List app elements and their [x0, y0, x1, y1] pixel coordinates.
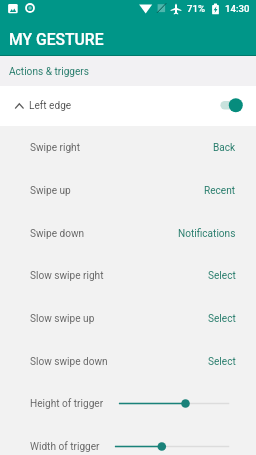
button[interactable]: Toggle left edge gesture [219, 94, 243, 118]
staticText: Height of trigger [30, 398, 104, 410]
staticText: Swipe down [30, 228, 85, 240]
staticText: Notifications [178, 228, 236, 240]
staticText: Actions & triggers [9, 66, 89, 78]
staticText: Slow swipe down [30, 356, 108, 368]
button[interactable]: Width of trigger slider [0, 425, 256, 455]
button[interactable]: Slow swipe down [0, 340, 256, 383]
staticText: Slow swipe up [30, 313, 95, 325]
staticText: Select [208, 313, 236, 325]
staticText: 14:30 [225, 3, 250, 14]
button[interactable]: Slow swipe right [0, 254, 256, 297]
staticText: Swipe right [30, 142, 80, 154]
button[interactable]: Actions & triggers [0, 56, 256, 86]
staticText: Width of trigger [30, 441, 100, 453]
button[interactable]: Height of trigger slider [0, 382, 256, 425]
staticText: MY GESTURE [9, 30, 104, 48]
staticText: 71% [187, 3, 205, 14]
button[interactable]: Swipe down [0, 212, 256, 255]
staticText: Select [208, 270, 236, 282]
staticText: Back [213, 142, 236, 154]
staticText: Slow swipe right [30, 270, 104, 282]
button[interactable]: Swipe up [0, 169, 256, 212]
staticText: Select [208, 356, 236, 368]
staticText: Recent [204, 185, 236, 197]
staticText: Swipe up [30, 185, 71, 197]
button[interactable]: Slow swipe up [0, 297, 256, 340]
button[interactable]: Left edge [0, 86, 256, 126]
staticText: Left edge [29, 100, 72, 112]
button[interactable]: Swipe right [0, 126, 256, 169]
